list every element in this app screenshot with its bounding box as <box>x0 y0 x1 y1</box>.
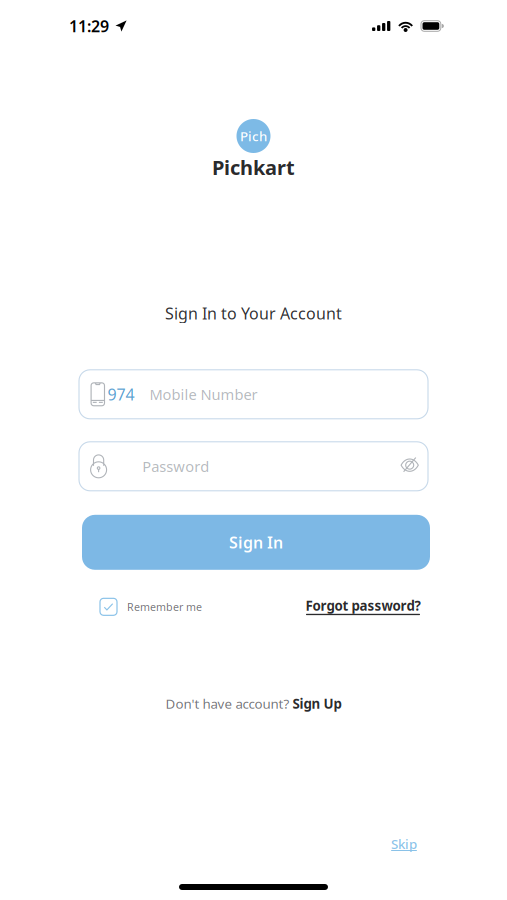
staticText: Password <box>142 457 209 476</box>
staticText: Mobile Number <box>150 385 258 404</box>
staticText: Remember me <box>127 600 202 614</box>
staticText: Forgot password? <box>305 597 420 614</box>
staticText: Pich <box>240 127 267 145</box>
button[interactable]: Sign Up <box>292 695 341 712</box>
button[interactable]: Skip <box>391 835 417 852</box>
button[interactable]: Forgot password? <box>303 597 423 617</box>
staticText: Sign Up <box>292 695 341 712</box>
staticText: Don't have account? <box>165 695 289 712</box>
staticText: 11:29 <box>69 15 109 37</box>
button[interactable]: Remember me <box>100 598 202 615</box>
staticText: Skip <box>391 835 417 853</box>
staticText: Pichkart <box>212 154 295 181</box>
staticText: Sign In <box>229 532 283 553</box>
button[interactable]: Show password <box>400 457 428 476</box>
staticText: 974 <box>108 384 135 405</box>
staticText: Sign In to Your Account <box>165 303 342 324</box>
button[interactable]: Sign In <box>82 515 430 570</box>
